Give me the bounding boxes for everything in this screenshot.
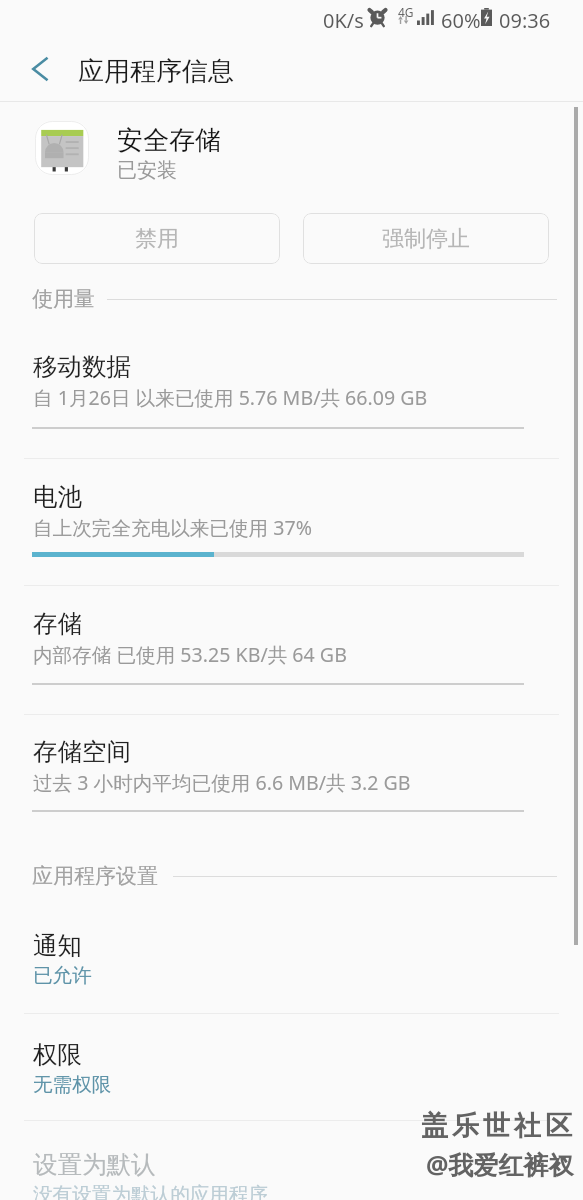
staticText: 强制停止 — [382, 225, 470, 253]
staticText: 已安装 — [117, 158, 177, 183]
button[interactable] — [0, 1013, 583, 1141]
staticText: 设置为默认 — [33, 1149, 156, 1180]
button[interactable] — [0, 582, 583, 710]
staticText: 电池 — [33, 481, 82, 512]
button[interactable]: 禁用 — [34, 213, 280, 264]
staticText: 权限 — [33, 1039, 82, 1070]
staticText: 自上次完全充电以来已使用 37% — [33, 514, 312, 541]
staticText: 应用程序设置 — [32, 863, 158, 889]
staticText: 09:36 — [499, 7, 551, 34]
button[interactable] — [0, 325, 583, 453]
staticText: 0K/s — [323, 7, 364, 34]
staticText: @我爱红裤衩 — [426, 1147, 574, 1181]
staticText: 自 1月26日 以来已使用 5.76 MB/共 66.09 GB — [33, 384, 428, 411]
staticText: 使用量 — [32, 286, 95, 312]
staticText: 4G — [398, 4, 414, 20]
staticText: 存储空间 — [33, 736, 131, 767]
staticText: 已允许 — [33, 963, 92, 988]
staticText: 无需权限 — [33, 1072, 112, 1097]
staticText: 应用程序信息 — [78, 55, 234, 88]
button[interactable]: Back — [11, 41, 66, 96]
button[interactable] — [0, 710, 583, 838]
staticText: 内部存储 已使用 53.25 KB/共 64 GB — [33, 641, 347, 668]
button[interactable] — [0, 455, 583, 583]
staticText: 安全存储 — [117, 124, 221, 157]
staticText: 禁用 — [135, 225, 179, 253]
staticText: 存储 — [33, 608, 82, 639]
button[interactable] — [0, 1123, 583, 1200]
staticText: 通知 — [33, 930, 82, 961]
staticText: 60% — [441, 7, 481, 34]
staticText: 没有设置为默认的应用程序 — [33, 1182, 269, 1200]
staticText: 移动数据 — [33, 351, 131, 382]
staticText: 盖乐世社区 — [419, 1109, 574, 1143]
button[interactable]: 强制停止 — [303, 213, 549, 264]
button[interactable] — [0, 904, 583, 1032]
staticText: 过去 3 小时内平均已使用 6.6 MB/共 3.2 GB — [33, 769, 411, 796]
